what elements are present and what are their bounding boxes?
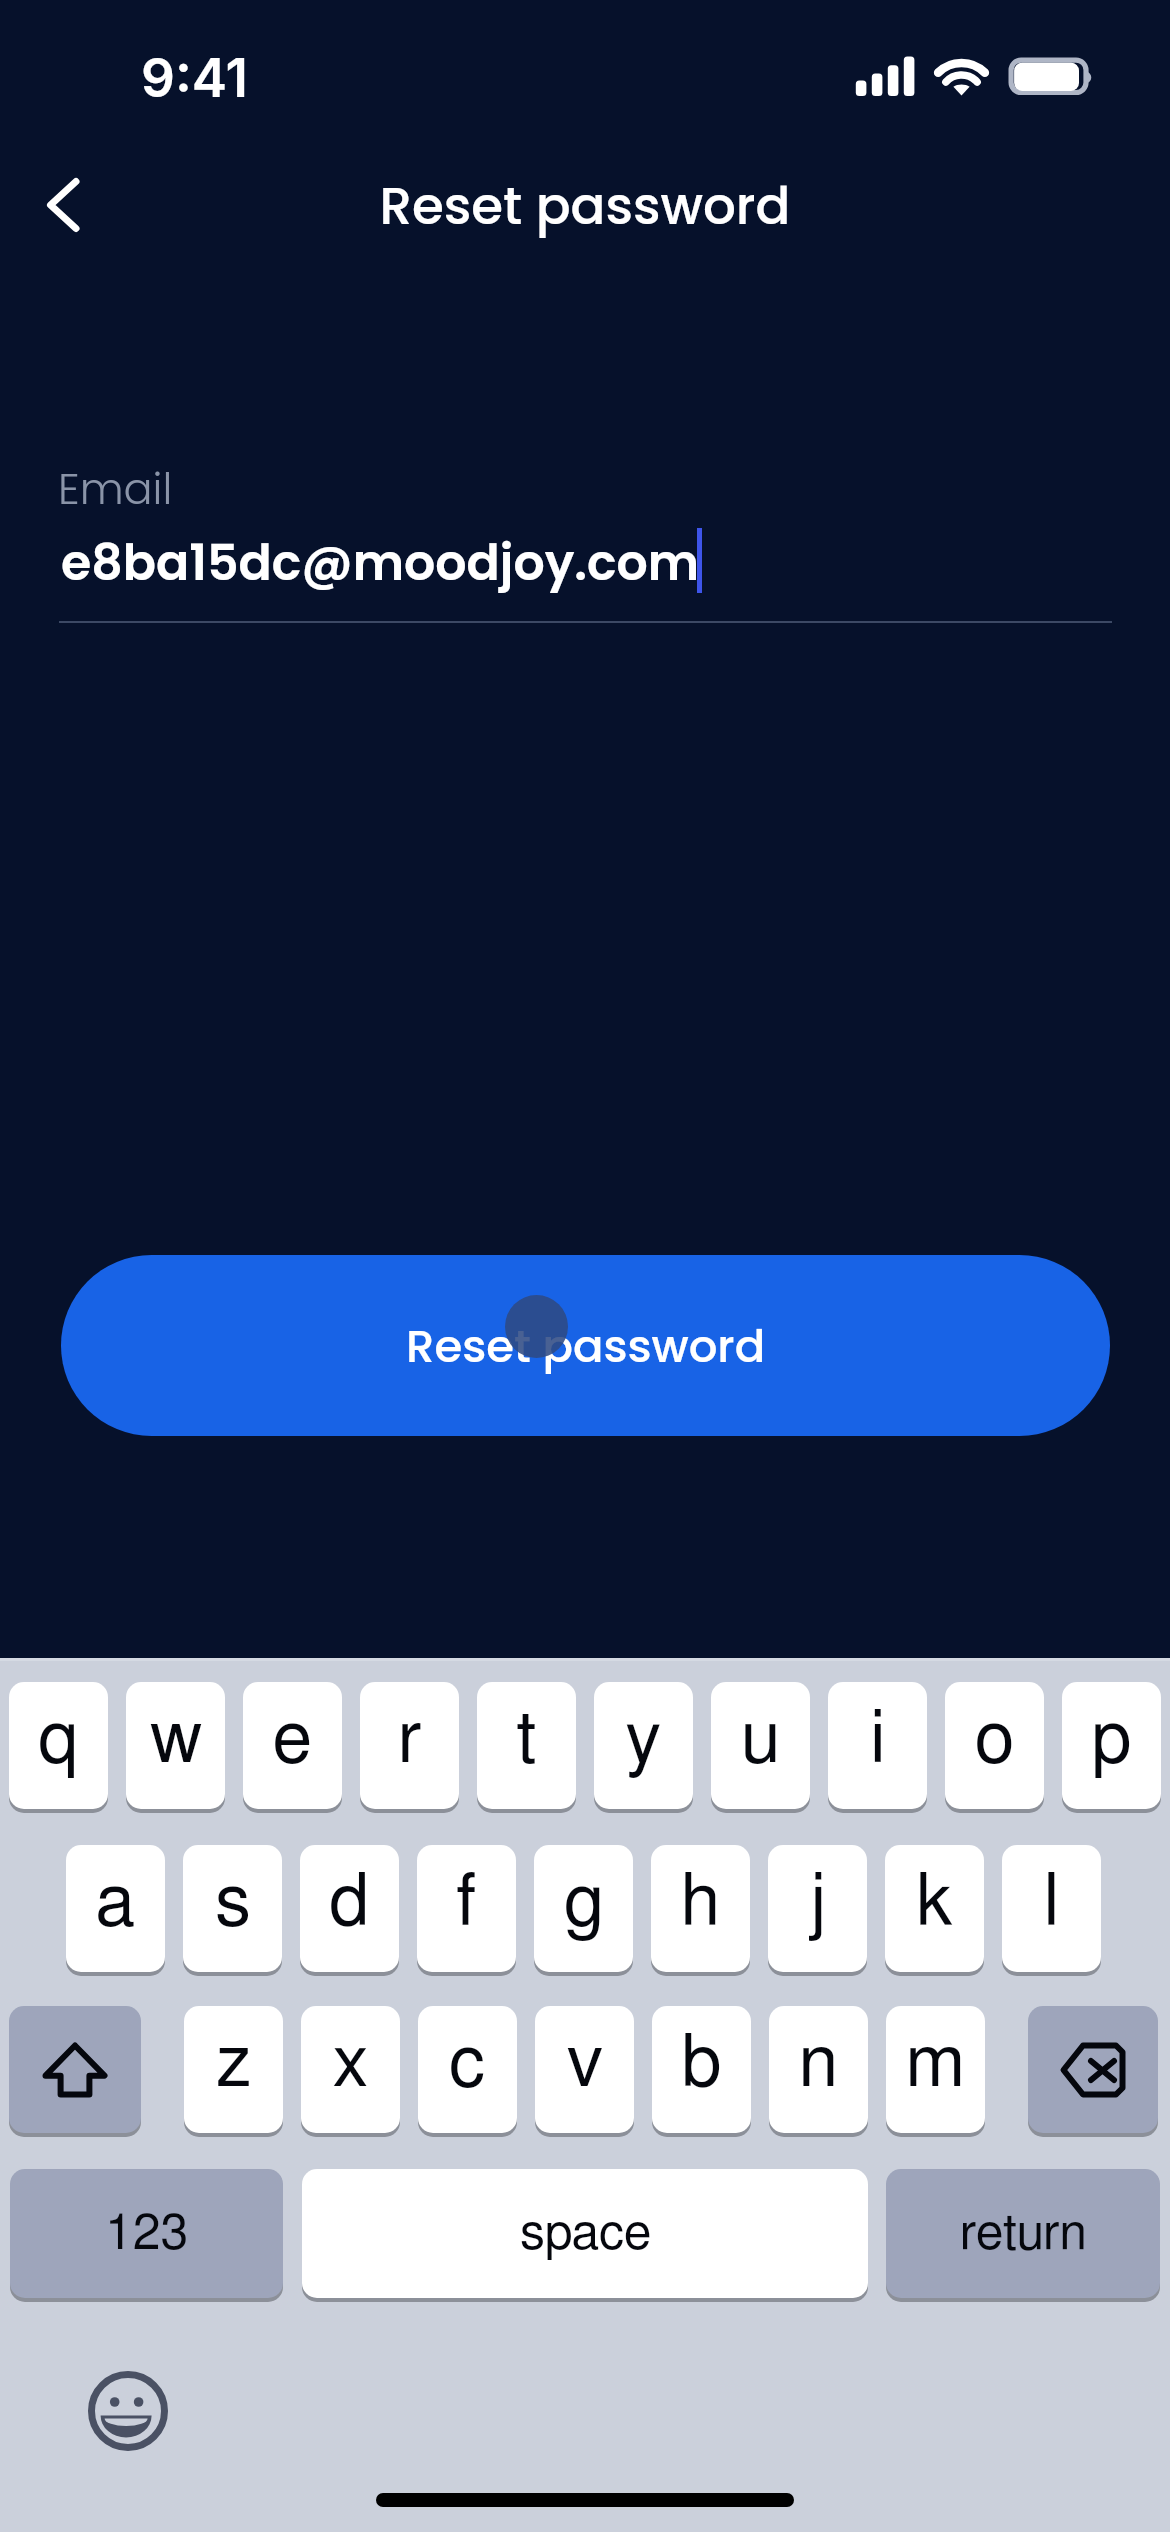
staticText: Email [58, 459, 173, 519]
button[interactable]: Back [14, 158, 98, 254]
staticText: o [975, 1704, 1014, 1776]
staticText: l [1044, 1867, 1060, 1939]
staticText: n [799, 2028, 838, 2100]
staticText: 123 [105, 2209, 189, 2259]
button[interactable]: y [594, 1682, 693, 1809]
button[interactable]: z [184, 2006, 283, 2133]
button[interactable]: j [768, 1845, 867, 1972]
button[interactable]: b [652, 2006, 751, 2133]
staticText: m [906, 2028, 965, 2100]
staticText: c [449, 2028, 486, 2100]
staticText: h [681, 1867, 720, 1939]
staticText: a [96, 1867, 136, 1939]
button[interactable]: u [711, 1682, 810, 1809]
button[interactable]: Backspace [1028, 2006, 1158, 2133]
button[interactable]: r [360, 1682, 459, 1809]
button[interactable]: m [886, 2006, 985, 2133]
button[interactable]: d [300, 1845, 399, 1972]
staticText: e8ba15dc@moodjoy.com [61, 529, 700, 598]
button[interactable]: c [418, 2006, 517, 2133]
staticText: return [960, 2209, 1087, 2259]
button[interactable]: p [1062, 1682, 1161, 1809]
button[interactable]: s [183, 1845, 282, 1972]
staticText: g [564, 1867, 604, 1939]
staticText: y [626, 1704, 661, 1776]
button[interactable]: q [9, 1682, 108, 1809]
button[interactable]: t [477, 1682, 576, 1809]
staticText: s [215, 1867, 251, 1939]
staticText: space [520, 2209, 651, 2259]
staticText: e [273, 1704, 312, 1776]
staticText: j [809, 1867, 827, 1939]
button[interactable]: e [243, 1682, 342, 1809]
staticText: f [456, 1867, 477, 1939]
button[interactable]: Emoji keyboard [88, 2371, 168, 2451]
button[interactable]: return [886, 2169, 1160, 2298]
button[interactable]: l [1002, 1845, 1101, 1972]
button[interactable]: k [885, 1845, 984, 1972]
button[interactable]: f [417, 1845, 516, 1972]
staticText: q [38, 1704, 79, 1776]
staticText: r [398, 1704, 422, 1776]
staticText: w [150, 1704, 202, 1776]
button[interactable]: space [302, 2169, 868, 2298]
button[interactable]: x [301, 2006, 400, 2133]
button[interactable]: h [651, 1845, 750, 1972]
staticText: k [916, 1867, 954, 1939]
staticText: x [333, 2028, 368, 2100]
staticText: 9:41 [141, 46, 248, 110]
button[interactable]: g [534, 1845, 633, 1972]
button[interactable]: Shift [9, 2006, 141, 2133]
button[interactable]: Reset password [61, 1255, 1110, 1436]
staticText: u [741, 1704, 780, 1776]
staticText: v [567, 2028, 603, 2100]
staticText: d [329, 1867, 370, 1939]
staticText: t [516, 1704, 537, 1776]
staticText: Reset password [406, 1315, 766, 1378]
button[interactable]: o [945, 1682, 1044, 1809]
button[interactable]: v [535, 2006, 634, 2133]
button[interactable]: i [828, 1682, 927, 1809]
staticText: i [870, 1704, 886, 1776]
staticText: z [216, 2028, 251, 2100]
staticText: Reset password [0, 170, 1170, 242]
button[interactable]: 123 [10, 2169, 283, 2298]
staticText: b [681, 2028, 722, 2100]
staticText: p [1091, 1704, 1132, 1776]
button[interactable]: a [66, 1845, 165, 1972]
button[interactable]: n [769, 2006, 868, 2133]
button[interactable]: w [126, 1682, 225, 1809]
